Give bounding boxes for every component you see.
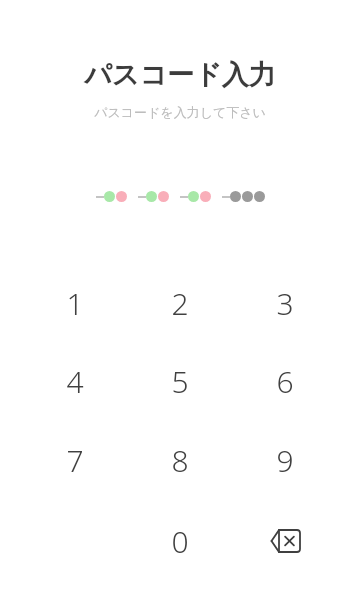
button[interactable]: 5 — [135, 359, 225, 403]
button[interactable]: 8 — [135, 438, 225, 482]
staticText: 3 — [276, 283, 294, 324]
button[interactable]: 1 — [30, 281, 120, 325]
staticText: 9 — [276, 440, 294, 481]
staticText: パスコードを入力して下さい — [94, 104, 266, 120]
button[interactable]: Delete — [240, 519, 330, 563]
button[interactable]: 0 — [135, 519, 225, 563]
button[interactable]: 3 — [240, 281, 330, 325]
staticText: 0 — [171, 521, 189, 562]
button[interactable]: 6 — [240, 359, 330, 403]
button[interactable]: 4 — [30, 359, 120, 403]
staticText: 8 — [171, 440, 189, 481]
button[interactable]: 7 — [30, 438, 120, 482]
staticText: 4 — [66, 361, 84, 402]
staticText: 5 — [171, 361, 189, 402]
staticText: パスコード入力 — [84, 58, 276, 92]
staticText: 7 — [66, 440, 84, 481]
button[interactable]: 9 — [240, 438, 330, 482]
staticText: 2 — [171, 283, 189, 324]
staticText: 1 — [66, 283, 84, 324]
button[interactable]: 2 — [135, 281, 225, 325]
staticText: 6 — [276, 361, 294, 402]
